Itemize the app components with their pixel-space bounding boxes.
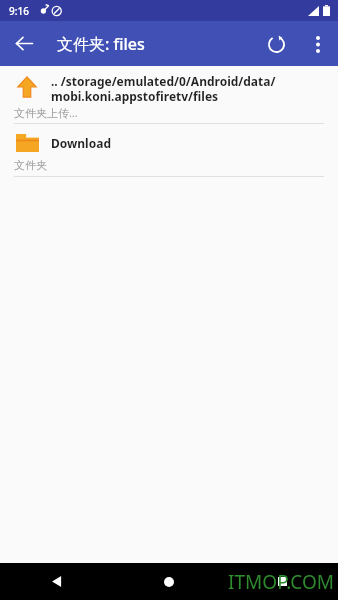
staticText: 文件夹上传… — [14, 105, 78, 120]
staticText: .. /storage/emulated/0/Android/data/ mob… — [51, 73, 276, 104]
button[interactable]: .. /storage/emulated/0/Android/data/ mob… — [0, 66, 338, 124]
button[interactable]: Refresh — [254, 22, 298, 66]
button[interactable]: Download — [0, 124, 338, 177]
staticText: 9:16 — [9, 4, 29, 18]
staticText: 文件夹: files — [57, 33, 145, 55]
button[interactable]: Recent apps — [226, 563, 338, 600]
staticText: Download — [51, 135, 111, 151]
button[interactable]: More options — [298, 24, 338, 64]
staticText: 文件夹 — [14, 158, 47, 172]
button[interactable]: Home — [113, 563, 225, 600]
button[interactable]: Back — [0, 21, 48, 66]
staticText: ITMOP.COM — [228, 569, 334, 595]
button[interactable]: Back — [0, 563, 112, 600]
